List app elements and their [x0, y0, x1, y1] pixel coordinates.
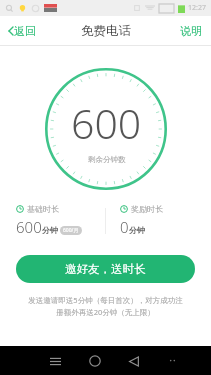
staticText: 邀好友，送时长 [65, 262, 146, 276]
button[interactable]: Menu [41, 347, 69, 375]
button[interactable]: 返回 [0, 19, 45, 43]
staticText: 剩余分钟数 [88, 155, 126, 164]
staticText: 分钟 [42, 225, 58, 235]
staticText: 0 [120, 217, 129, 237]
button[interactable]: Back [120, 347, 148, 375]
staticText: 600/月 [63, 227, 79, 234]
button[interactable]: 说明 [171, 19, 211, 43]
staticText: 600 [16, 217, 42, 237]
staticText: 说明 [180, 24, 202, 38]
staticText: 12:27 [188, 3, 206, 13]
staticText: 奖励时长 [131, 204, 163, 214]
button[interactable]: 邀好友，送时长 [16, 255, 195, 283]
staticText: 返回 [14, 24, 36, 38]
button[interactable]: More [160, 349, 184, 373]
staticText: 分钟 [129, 225, 145, 235]
staticText: 600 [71, 95, 142, 151]
button[interactable]: Home [81, 347, 109, 375]
staticText: 基础时长 [27, 204, 59, 214]
staticText: 免费电话 [81, 23, 131, 39]
staticText: 发送邀请即送5分钟（每日首次），对方成功注 册额外再送20分钟（无上限） [14, 295, 197, 318]
